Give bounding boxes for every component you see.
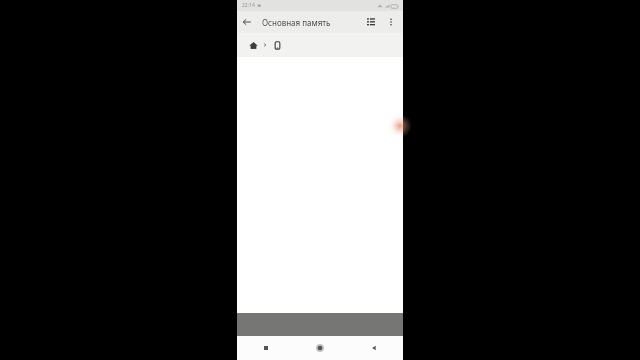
button[interactable]: Основная память <box>270 38 284 52</box>
button[interactable]: Главный экран <box>312 340 328 356</box>
button[interactable]: Назад <box>237 12 257 32</box>
button[interactable]: Вид списка <box>361 12 381 32</box>
button[interactable]: Ещё <box>381 12 401 32</box>
button[interactable]: Последние приложения <box>258 340 274 356</box>
staticText: Основная память <box>262 17 361 28</box>
button[interactable]: Домой <box>246 38 260 52</box>
button[interactable]: Назад <box>366 340 382 356</box>
staticText: 22:14 <box>242 2 255 9</box>
